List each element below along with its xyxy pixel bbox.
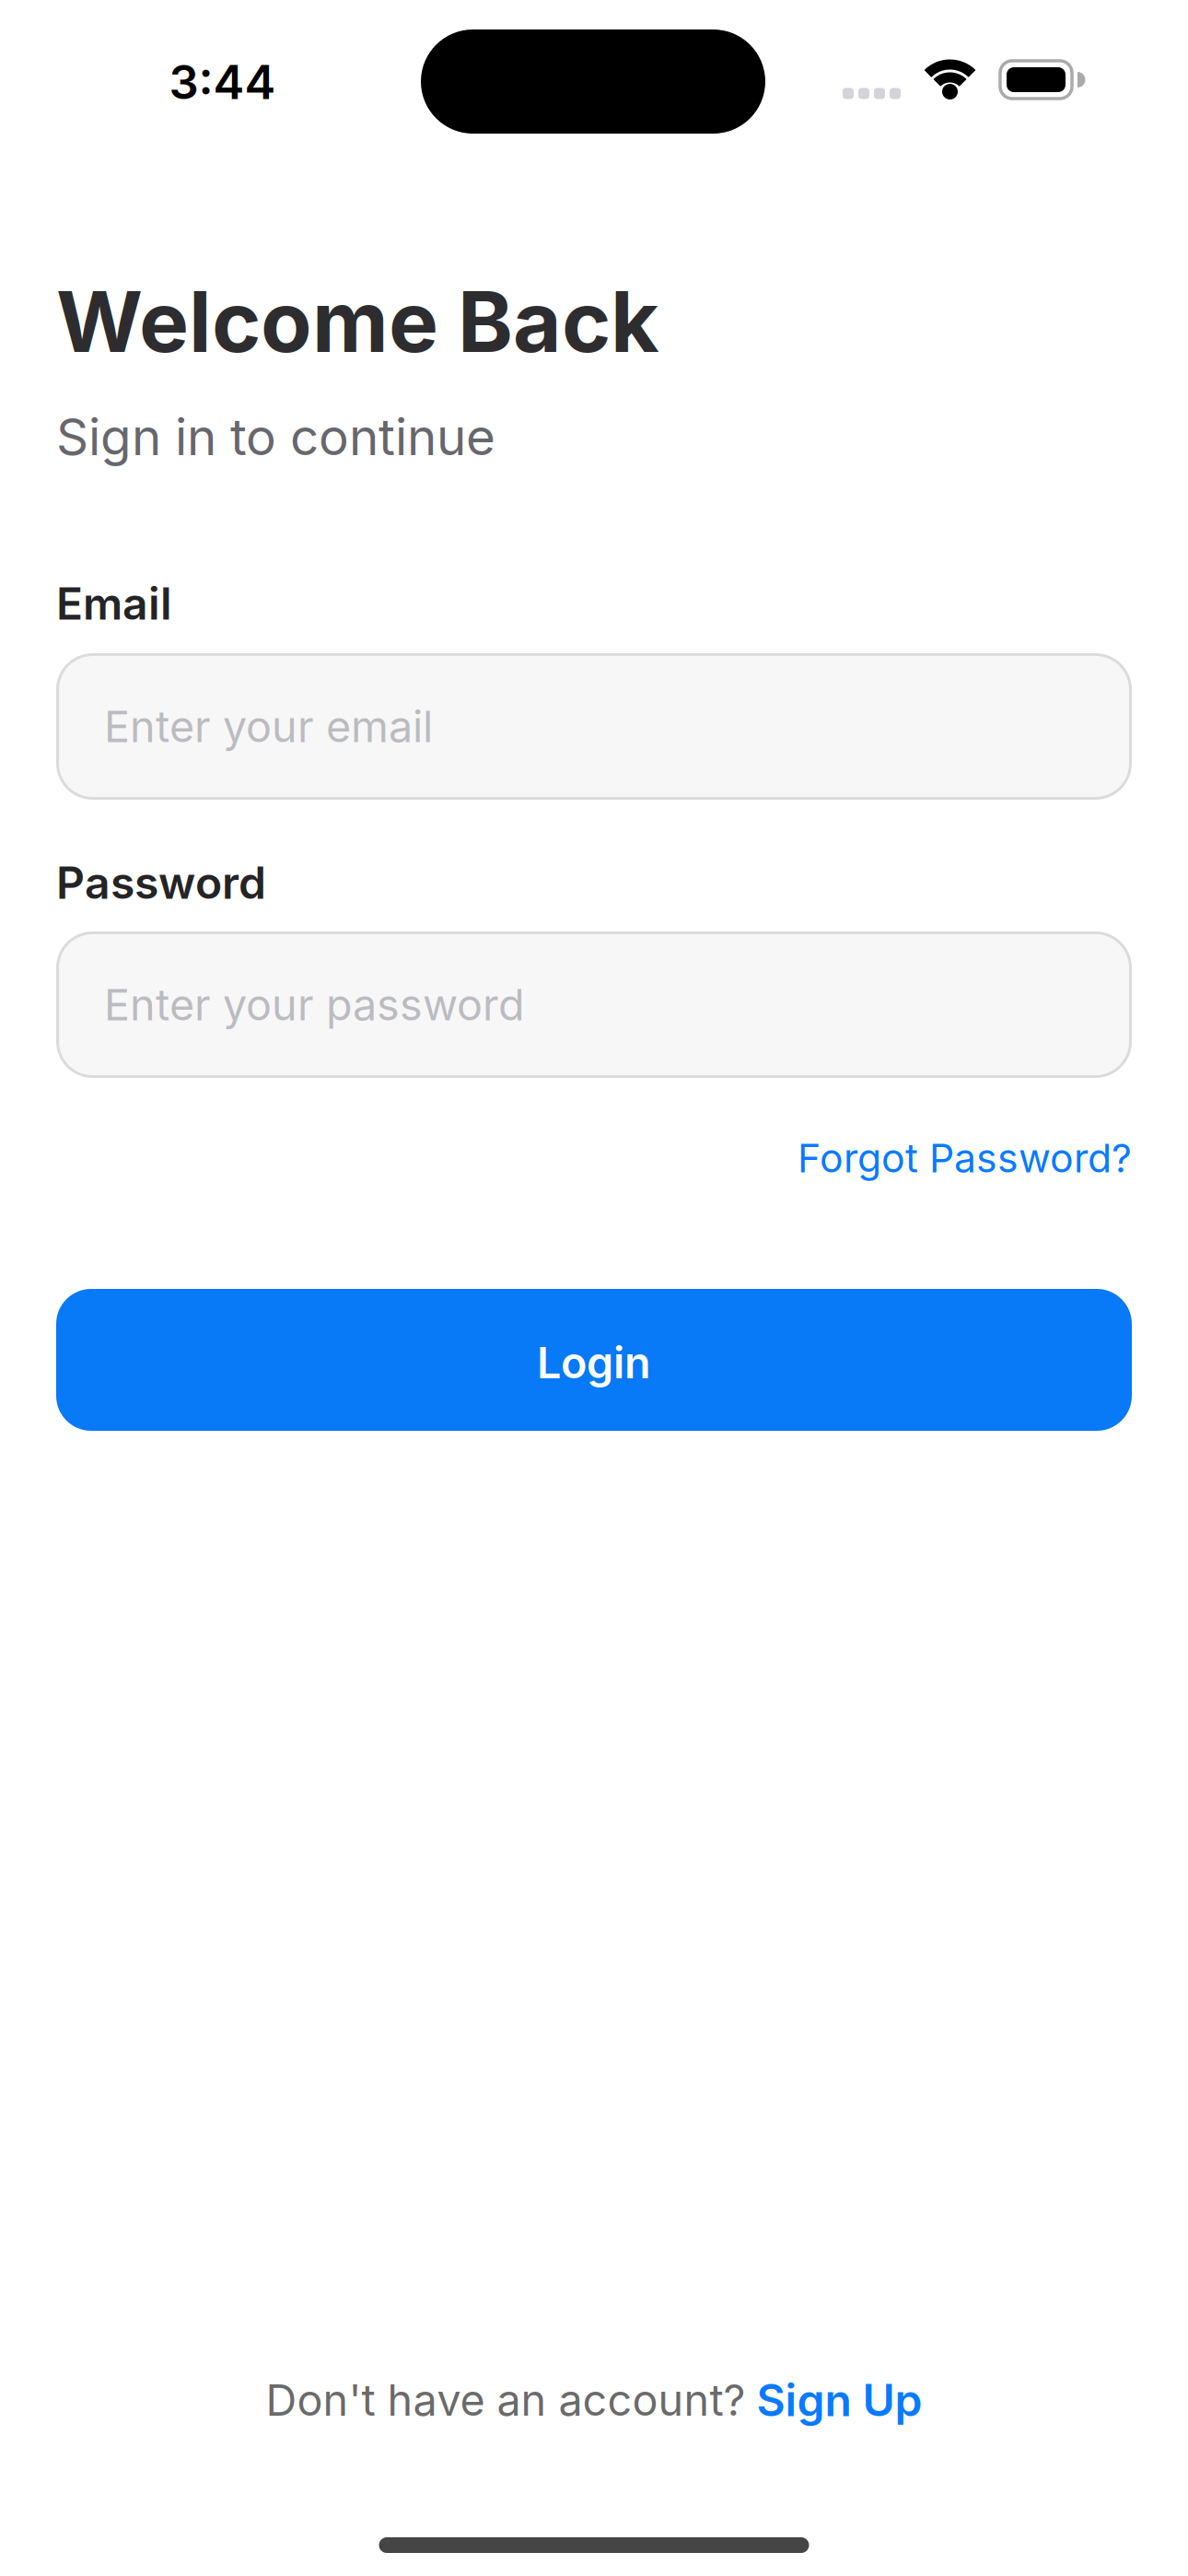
staticText: Don't have an account? [266,2375,745,2425]
staticText: Forgot Password? [798,1135,1132,1181]
button[interactable]: Sign Up [757,2374,922,2426]
button[interactable]: Login [56,1289,1132,1431]
staticText: Sign Up [757,2374,922,2426]
staticText: Welcome Back [56,272,659,371]
staticText: Sign in to continue [56,407,495,466]
staticText: Password [56,857,266,909]
staticText: Login [537,1337,651,1388]
staticText: Enter your password [104,979,525,1030]
button[interactable]: Enter your email [56,653,1132,800]
button[interactable]: Forgot Password? [798,1135,1132,1181]
button[interactable]: Enter your password [56,931,1132,1078]
staticText: 3:44 [169,54,276,110]
staticText: Enter your email [104,701,433,752]
staticText: Email [56,577,172,630]
